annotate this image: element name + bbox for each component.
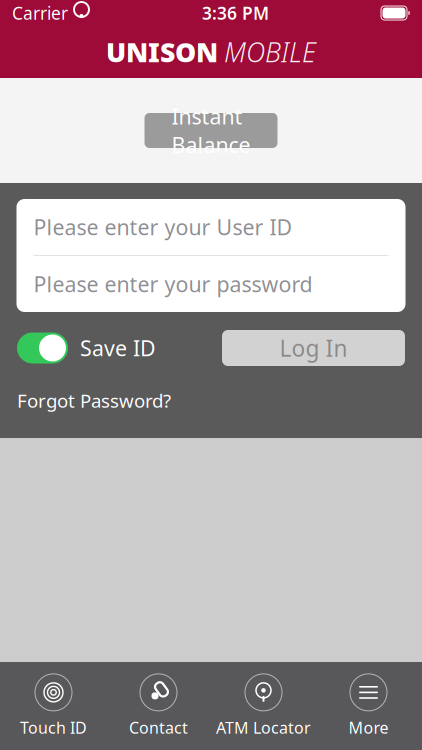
- button[interactable]: More: [316, 671, 421, 741]
- staticText: UNISON: [106, 34, 218, 70]
- staticText: Instant Balance: [171, 102, 250, 159]
- button[interactable]: Forgot Password?: [17, 384, 171, 417]
- staticText: Please enter your User ID: [33, 213, 292, 241]
- button[interactable]: Touch ID: [1, 671, 106, 741]
- staticText: More: [348, 717, 388, 738]
- staticText: Save ID: [80, 334, 156, 362]
- button[interactable]: Save ID: [17, 332, 156, 363]
- staticText: Forgot Password?: [17, 388, 171, 413]
- staticText: Log In: [279, 333, 347, 363]
- staticText: MOBILE: [224, 34, 316, 70]
- staticText: ATM Locator: [216, 717, 311, 738]
- staticText: Contact: [129, 717, 188, 738]
- staticText: Carrier: [12, 1, 68, 24]
- button[interactable]: ATM Locator: [211, 671, 316, 741]
- button[interactable]: Contact: [106, 671, 211, 741]
- staticText: 3:36 PM: [202, 1, 269, 24]
- staticText: Touch ID: [20, 717, 87, 738]
- staticText: Please enter your password: [33, 270, 312, 298]
- button[interactable]: Log In: [222, 330, 405, 366]
- button[interactable]: Instant Balance: [144, 113, 277, 148]
